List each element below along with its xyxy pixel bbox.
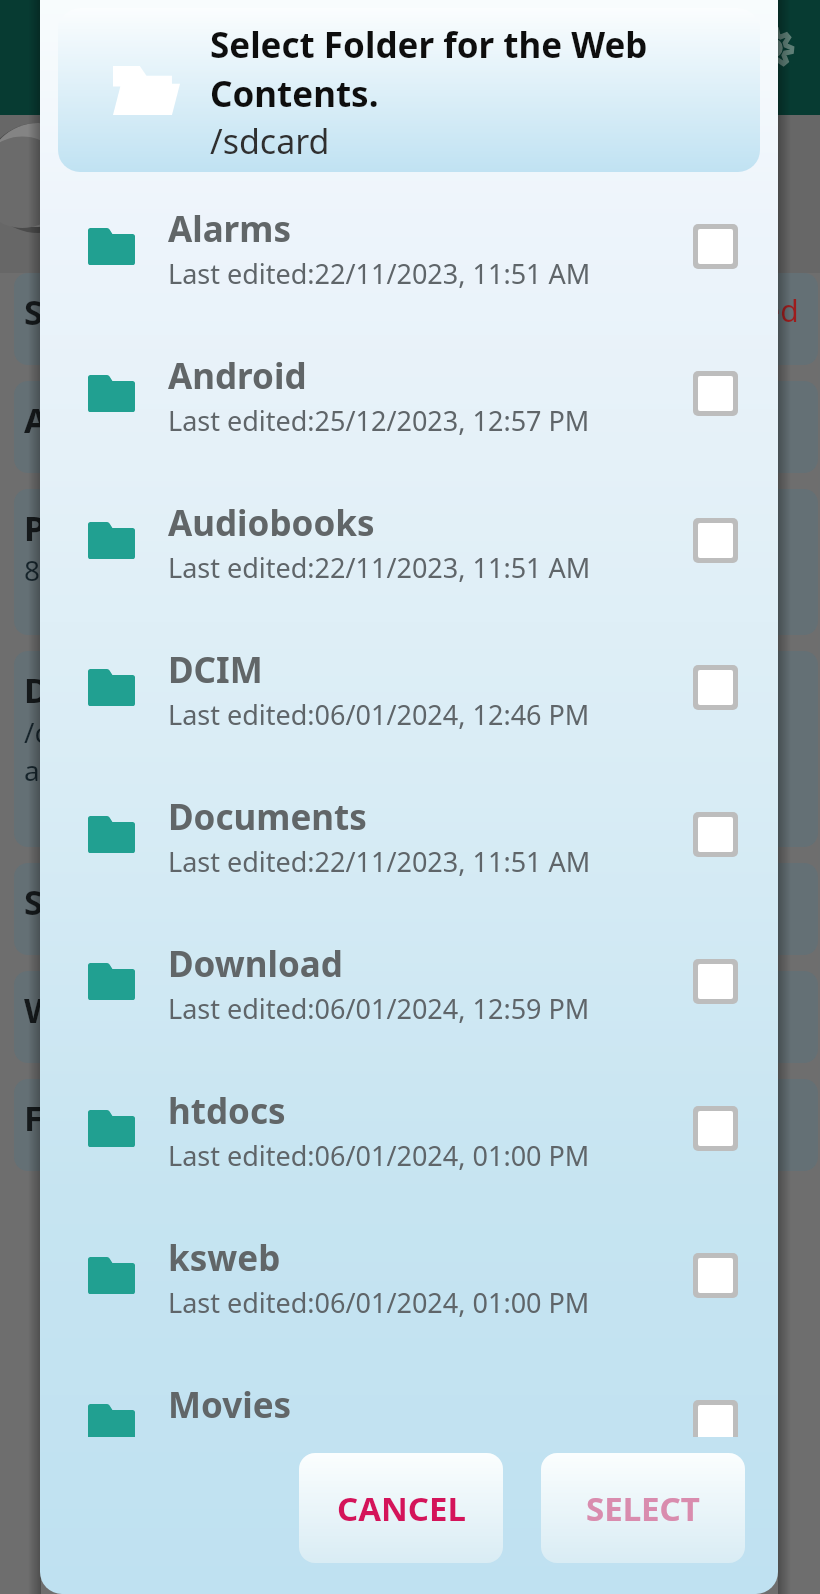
button[interactable]: SELECT — [541, 1453, 745, 1563]
staticText: SELECT — [586, 1486, 700, 1531]
button[interactable]: Alarms — [40, 190, 778, 337]
button[interactable]: DCIM — [40, 631, 778, 778]
staticText: Movies — [168, 1381, 292, 1429]
staticText: Documents — [168, 793, 367, 841]
staticText: W — [24, 987, 57, 1033]
staticText: S — [24, 289, 43, 335]
button[interactable]: Download — [40, 925, 778, 1072]
button[interactable]: Audiobooks — [40, 484, 778, 631]
button[interactable]: Settings — [753, 28, 793, 68]
staticText: Last edited:06/01/2024, 12:46 PM — [168, 696, 590, 733]
staticText: CANCEL — [337, 1486, 466, 1531]
staticText: Android — [168, 352, 307, 400]
staticText: DCIM — [168, 646, 263, 694]
staticText: Last edited:06/01/2024, 01:00 PM — [168, 1137, 590, 1174]
staticText: a — [24, 751, 40, 789]
button[interactable]: ksweb — [40, 1219, 778, 1366]
staticText: ksweb — [168, 1234, 281, 1282]
staticText: 8 — [24, 551, 41, 589]
button[interactable]: Movies — [40, 1366, 778, 1437]
staticText: /c — [24, 713, 48, 751]
staticText: Last edited:22/11/2023, 11:51 AM — [168, 255, 591, 292]
button[interactable]: Documents — [40, 778, 778, 925]
staticText: D — [24, 667, 49, 713]
staticText: S — [24, 879, 43, 925]
staticText: Alarms — [168, 205, 291, 253]
button[interactable]: Android — [40, 337, 778, 484]
button[interactable]: htdocs — [40, 1072, 778, 1219]
staticText: Download — [168, 940, 343, 988]
staticText: Last edited:06/01/2024, 12:59 PM — [168, 990, 590, 1027]
staticText: Last edited:06/01/2024, 01:00 PM — [168, 1284, 590, 1321]
staticText: Last edited:22/11/2023, 11:51 AM — [168, 843, 591, 880]
staticText: F — [24, 1095, 43, 1141]
staticText: A — [24, 397, 48, 443]
staticText: Last edited:25/12/2023, 12:57 PM — [168, 402, 590, 439]
staticText: Enabled — [685, 290, 799, 331]
staticText: /sdcard — [210, 118, 330, 164]
staticText: Last edited:22/11/2023, 11:51 AM — [168, 549, 591, 586]
button[interactable]: CANCEL — [299, 1453, 503, 1563]
staticText: Audiobooks — [168, 499, 375, 547]
staticText: htdocs — [168, 1087, 286, 1135]
staticText: P — [24, 505, 46, 551]
staticText: Select Folder for the Web Contents. — [210, 21, 760, 118]
